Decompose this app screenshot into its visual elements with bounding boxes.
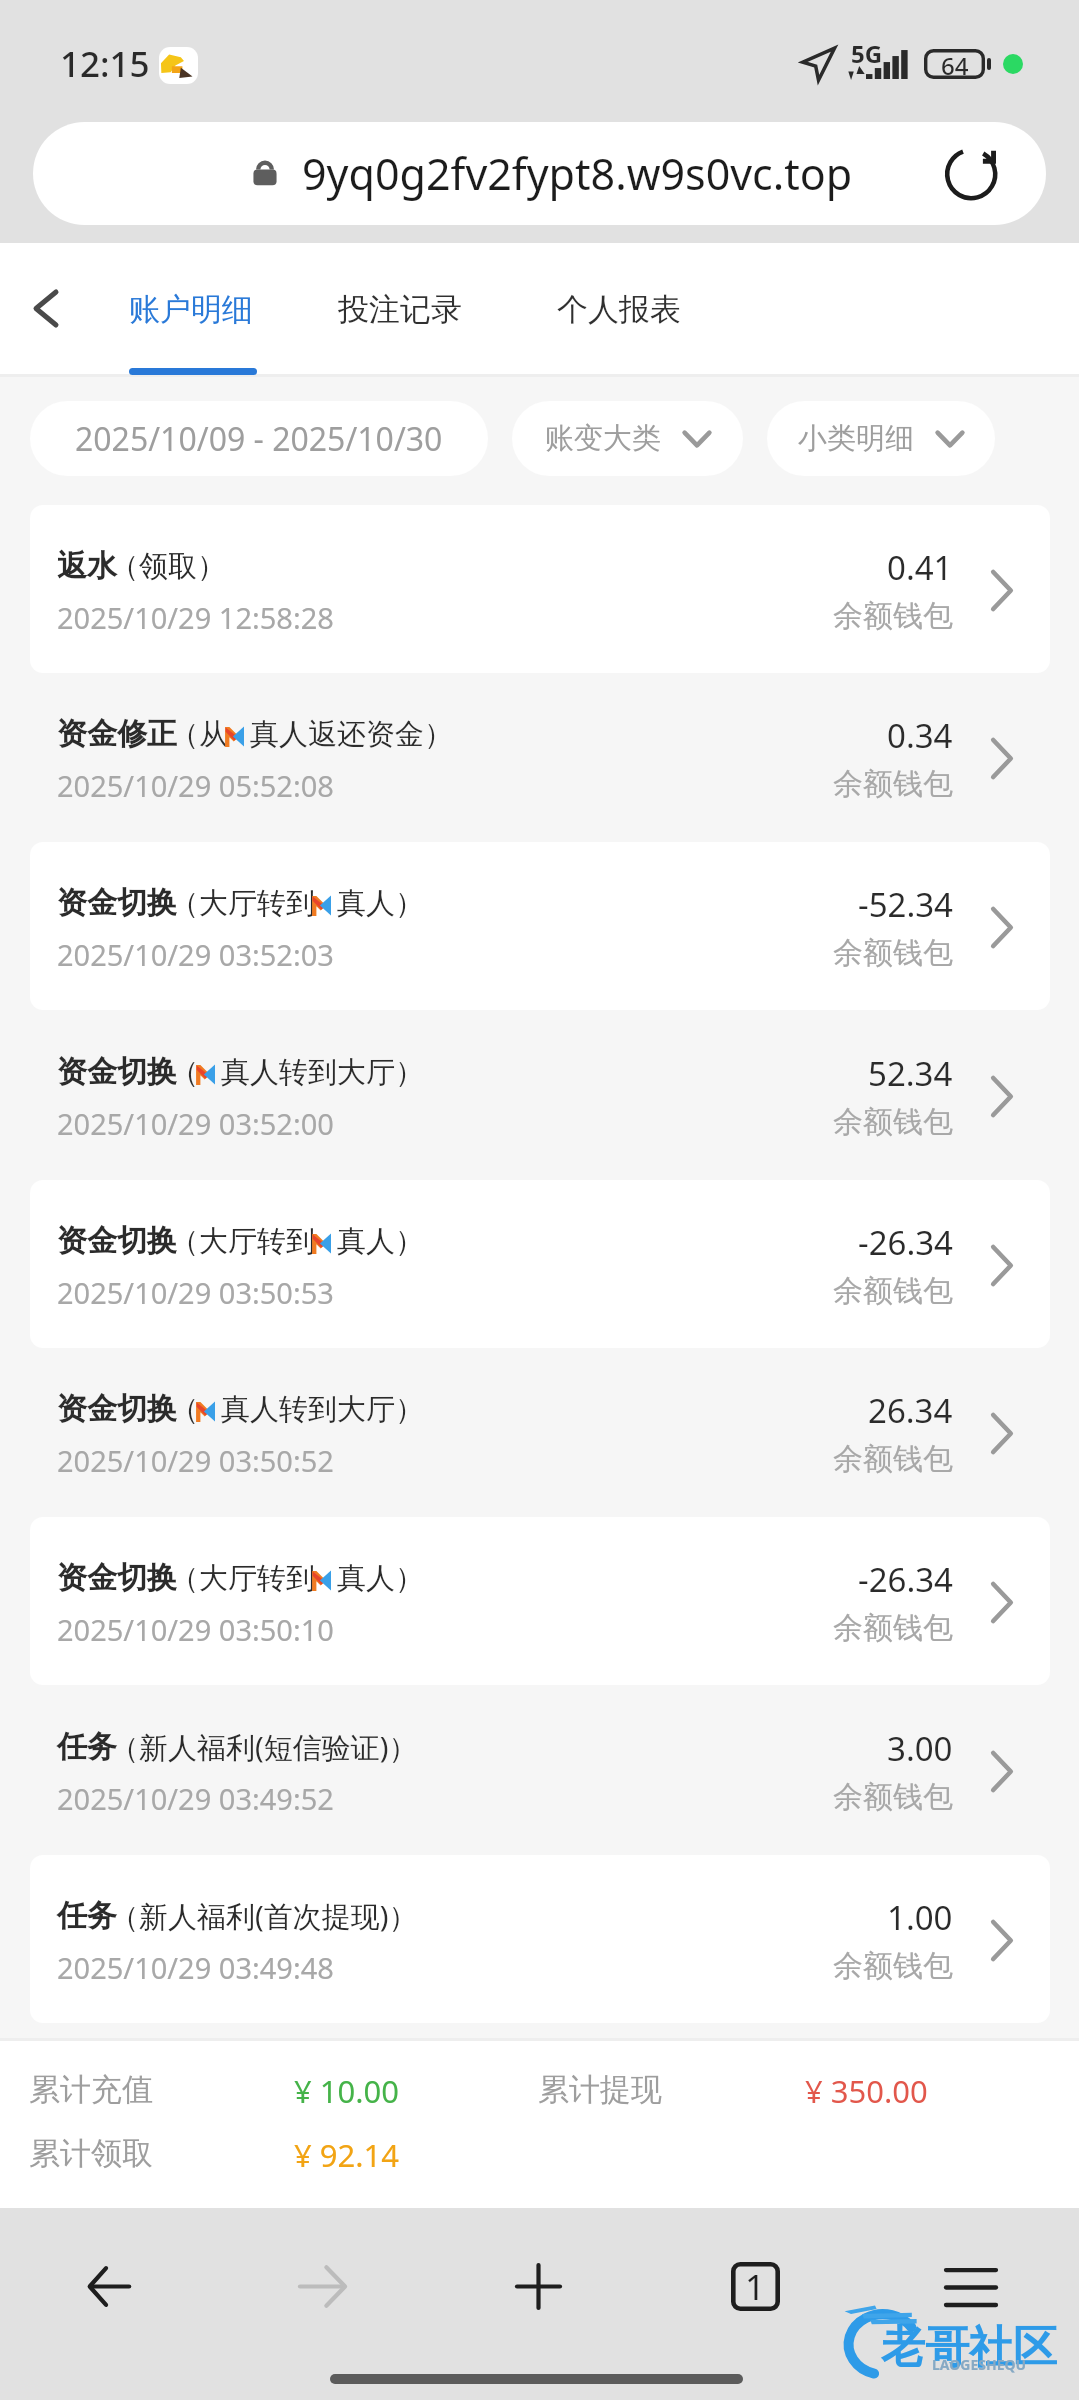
- staticText: 资金切换: [57, 884, 177, 922]
- staticText: （: [170, 1391, 199, 1428]
- staticText: 累计领取: [29, 2134, 153, 2173]
- staticText: 1.00: [887, 1895, 953, 1937]
- staticText: 返水: [57, 547, 117, 585]
- staticText: 资金切换: [57, 1559, 177, 1597]
- staticText: 真人）: [337, 1223, 424, 1260]
- staticText: -52.34: [858, 882, 953, 924]
- staticText: 账户明细: [129, 290, 253, 329]
- button[interactable]: 2025/10/09 - 2025/10/30: [30, 401, 488, 476]
- button[interactable]: 9yq0g2fv2fypt8.w9s0vc.top: [33, 122, 1046, 225]
- staticText: 2025/10/29 12:58:28: [57, 598, 334, 637]
- staticText: 3.00: [887, 1726, 953, 1768]
- staticText: 2025/10/29 03:50:53: [57, 1273, 334, 1312]
- staticText: 累计充值: [29, 2070, 153, 2109]
- button[interactable]: 资金修正: [30, 673, 1050, 841]
- staticText: 余额钱包: [833, 597, 953, 635]
- staticText: 资金切换: [57, 1053, 177, 1091]
- staticText: （领取）: [110, 548, 226, 585]
- button[interactable]: Tabs: [731, 2262, 780, 2311]
- staticText: 9yq0g2fv2fypt8.w9s0vc.top: [302, 144, 853, 203]
- staticText: 2025/10/29 03:52:00: [57, 1104, 334, 1143]
- staticText: 2025/10/09 - 2025/10/30: [75, 417, 443, 461]
- staticText: 2025/10/29 05:52:08: [57, 766, 334, 805]
- staticText: 2025/10/29 03:49:52: [57, 1779, 334, 1818]
- button[interactable]: Back: [71, 2248, 147, 2324]
- staticText: （新人福利(首次提现)）: [110, 1896, 418, 1936]
- button[interactable]: Reload: [930, 133, 1012, 215]
- button[interactable]: 资金切换: [30, 842, 1050, 1010]
- staticText: -26.34: [858, 1220, 953, 1262]
- staticText: （大厅转到: [170, 1223, 315, 1260]
- staticText: 资金切换: [57, 1222, 177, 1260]
- button[interactable]: 账户明细: [129, 272, 253, 346]
- staticText: （新人福利(短信验证)）: [110, 1727, 418, 1767]
- staticText: 余额钱包: [833, 1272, 953, 1310]
- staticText: 真人转到大厅）: [221, 1391, 424, 1428]
- staticText: 2025/10/29 03:50:10: [57, 1610, 334, 1649]
- staticText: （大厅转到: [170, 885, 315, 922]
- staticText: （从: [170, 716, 228, 753]
- staticText: 余额钱包: [833, 765, 953, 803]
- staticText: 真人）: [337, 1560, 424, 1597]
- button[interactable]: 资金切换: [30, 1180, 1050, 1348]
- staticText: 真人转到大厅）: [221, 1054, 424, 1091]
- staticText: 26.34: [868, 1388, 953, 1430]
- staticText: 12:15: [60, 40, 150, 88]
- staticText: 资金修正: [57, 715, 177, 753]
- button[interactable]: Forward: [285, 2248, 361, 2324]
- button[interactable]: 资金切换: [30, 1517, 1050, 1685]
- button[interactable]: 个人报表: [557, 272, 681, 346]
- staticText: 1: [745, 2263, 766, 2311]
- staticText: 任务: [57, 1728, 117, 1766]
- button[interactable]: 小类明细: [767, 401, 995, 476]
- staticText: 小类明细: [798, 420, 914, 457]
- staticText: 余额钱包: [833, 1440, 953, 1478]
- staticText: 真人）: [337, 885, 424, 922]
- staticText: 64: [941, 49, 969, 79]
- staticText: 个人报表: [557, 290, 681, 329]
- staticText: 老哥社区: [881, 2320, 1057, 2375]
- button[interactable]: Menu: [933, 2248, 1009, 2324]
- staticText: 0.41: [887, 545, 953, 587]
- staticText: 2025/10/29 03:52:03: [57, 935, 334, 974]
- staticText: 真人返还资金）: [250, 716, 453, 753]
- staticText: 5G: [851, 37, 883, 70]
- button[interactable]: Back: [16, 278, 76, 338]
- button[interactable]: 资金切换: [30, 1011, 1050, 1179]
- button[interactable]: 任务: [30, 1855, 1050, 2023]
- staticText: （大厅转到: [170, 1560, 315, 1597]
- staticText: ¥ 350.00: [805, 2070, 928, 2112]
- staticText: ¥ 10.00: [294, 2070, 400, 2112]
- staticText: （: [170, 1054, 199, 1091]
- staticText: 余额钱包: [833, 1778, 953, 1816]
- staticText: 资金切换: [57, 1390, 177, 1428]
- staticText: -26.34: [858, 1557, 953, 1599]
- button[interactable]: 账变大类: [512, 401, 743, 476]
- staticText: 余额钱包: [833, 1609, 953, 1647]
- staticText: 52.34: [868, 1051, 953, 1093]
- button[interactable]: 资金切换: [30, 1348, 1050, 1516]
- staticText: 任务: [57, 1897, 117, 1935]
- button[interactable]: New tab: [500, 2248, 576, 2324]
- staticText: 账变大类: [545, 420, 661, 457]
- staticText: 余额钱包: [833, 1103, 953, 1141]
- staticText: ¥ 92.14: [294, 2134, 400, 2176]
- staticText: 2025/10/29 03:50:52: [57, 1441, 334, 1480]
- staticText: 余额钱包: [833, 934, 953, 972]
- button[interactable]: 任务: [30, 1686, 1050, 1854]
- staticText: 2025/10/29 03:49:48: [57, 1948, 334, 1987]
- staticText: 累计提现: [538, 2070, 662, 2109]
- staticText: 余额钱包: [833, 1947, 953, 1985]
- button[interactable]: 投注记录: [338, 272, 462, 346]
- staticText: 投注记录: [338, 290, 462, 329]
- button[interactable]: 返水: [30, 505, 1050, 673]
- staticText: LAOGESHEQU: [932, 2355, 1027, 2374]
- staticText: 0.34: [887, 713, 953, 755]
